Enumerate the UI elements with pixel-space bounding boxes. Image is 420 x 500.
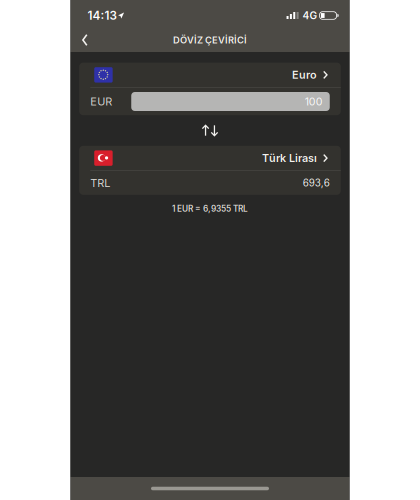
button[interactable]: Back — [70, 28, 97, 52]
staticText: Euro — [292, 68, 317, 81]
button[interactable]: Swap currencies — [180, 115, 240, 146]
staticText: 100 — [305, 95, 323, 108]
staticText: 693,6 — [303, 177, 330, 189]
staticText: 4G — [303, 9, 318, 22]
button[interactable]: Türk Lirası — [79, 146, 341, 170]
button[interactable]: Euro — [79, 63, 341, 87]
staticText: 14:13 — [87, 8, 116, 23]
staticText: EUR — [90, 95, 112, 108]
staticText: DÖVİZ ÇEVİRİCİ — [173, 34, 247, 46]
staticText: TRL — [90, 176, 110, 189]
staticText: Türk Lirası — [262, 152, 317, 165]
staticText: 1 EUR = 6,9355 TRL — [172, 204, 248, 214]
